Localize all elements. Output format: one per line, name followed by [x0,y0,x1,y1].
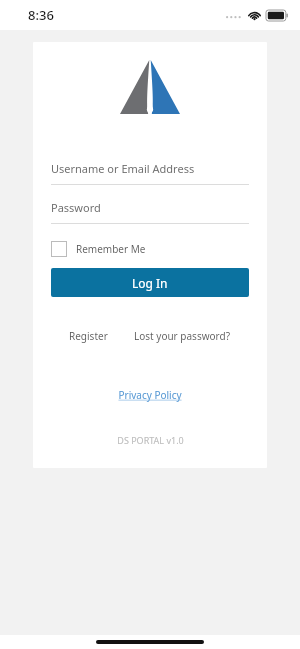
button[interactable]: Log In [51,268,249,297]
other: App logo [120,60,180,114]
button[interactable]: Password [51,200,249,224]
staticText: Password [51,200,101,215]
button[interactable]: Remember Me [51,241,249,257]
staticText: Privacy Policy [118,388,182,402]
button[interactable]: Username or Email Address [51,161,249,185]
staticText: Username or Email Address [51,161,195,176]
button[interactable]: Privacy Policy [114,386,186,404]
button[interactable]: Register [65,326,112,346]
staticText: DS PORTAL v1.0 [117,434,184,446]
staticText: Lost your password? [134,329,231,343]
staticText: Remember Me [76,242,146,256]
staticText: Register [69,329,108,343]
staticText: 8:36 [28,6,54,24]
button[interactable]: Lost your password? [130,326,235,346]
staticText: Log In [132,275,168,291]
